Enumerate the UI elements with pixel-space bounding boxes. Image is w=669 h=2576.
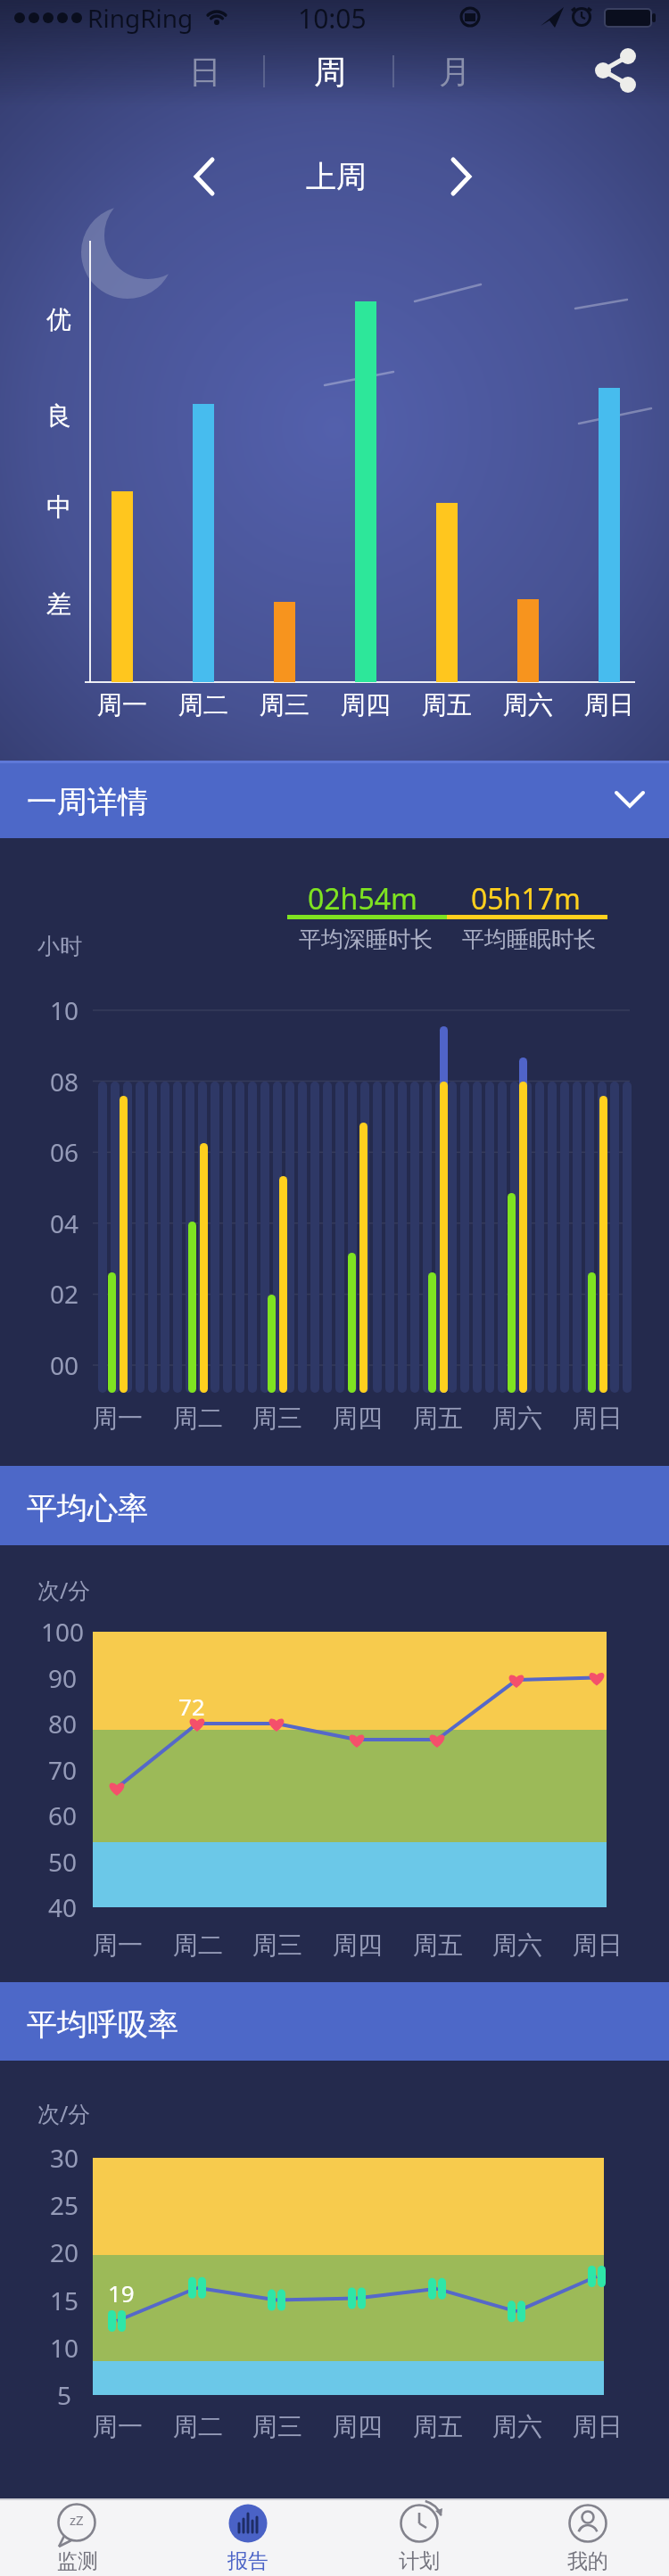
staticText: 60 — [48, 1798, 78, 1832]
staticText: 周二 — [173, 1930, 223, 1961]
staticText: 05h17m — [471, 879, 581, 918]
staticText: 周五 — [413, 1930, 463, 1961]
staticText: 周六 — [492, 1403, 542, 1434]
staticText: 周 — [314, 52, 346, 92]
staticText: 周一 — [93, 1403, 143, 1434]
staticText: RingRing — [87, 1, 194, 35]
button[interactable] — [0, 1982, 669, 2061]
staticText: 周五 — [413, 1403, 463, 1434]
staticText: 日 — [189, 52, 221, 92]
staticText: 周二 — [173, 2411, 223, 2442]
staticText: 周日 — [573, 2411, 623, 2442]
staticText: 06 — [50, 1135, 79, 1169]
staticText: 周一 — [93, 1930, 143, 1961]
button[interactable] — [0, 2498, 168, 2576]
button[interactable] — [580, 36, 651, 107]
button[interactable] — [169, 143, 241, 210]
staticText: 月 — [439, 52, 471, 92]
staticText: 一周详情 — [27, 783, 148, 821]
staticText: 周五 — [413, 2411, 463, 2442]
button[interactable] — [0, 761, 669, 838]
staticText: 周三 — [252, 1930, 302, 1961]
staticText: 5 — [57, 2378, 72, 2412]
staticText: 周一 — [93, 2411, 143, 2442]
staticText: 监测 — [57, 2548, 98, 2574]
staticText: 次/分 — [37, 2098, 91, 2128]
staticText: 02 — [50, 1277, 79, 1311]
staticText: 08 — [50, 1065, 79, 1099]
button[interactable] — [334, 2498, 502, 2576]
staticText: 平均深睡时长 — [299, 926, 433, 953]
staticText: 小时 — [37, 933, 82, 960]
staticText: 周五 — [422, 689, 472, 720]
staticText: 15 — [50, 2284, 79, 2317]
staticText: 平均睡眠时长 — [462, 926, 596, 953]
staticText: 周四 — [341, 689, 391, 720]
staticText: zZ — [70, 2511, 84, 2529]
button[interactable]: 日 — [169, 41, 241, 102]
staticText: 90 — [48, 1661, 78, 1695]
staticText: 周四 — [333, 2411, 383, 2442]
staticText: 周六 — [492, 2411, 542, 2442]
staticText: 良 — [46, 400, 71, 432]
staticText: 10:05 — [298, 0, 367, 37]
staticText: 周三 — [260, 689, 310, 720]
staticText: 周一 — [97, 689, 147, 720]
staticText: 周日 — [584, 689, 634, 720]
staticText: 72 — [178, 1691, 205, 1722]
button[interactable]: 周 — [294, 41, 366, 102]
staticText: 70 — [48, 1753, 78, 1787]
staticText: 10 — [50, 2331, 79, 2365]
staticText: 25 — [50, 2188, 79, 2222]
staticText: 次/分 — [37, 1575, 91, 1605]
staticText: 19 — [108, 2277, 135, 2309]
button[interactable] — [434, 143, 505, 210]
staticText: 50 — [48, 1845, 78, 1879]
staticText: 10 — [50, 993, 79, 1027]
staticText: 上周 — [306, 158, 367, 196]
staticText: 报告 — [227, 2548, 268, 2574]
button[interactable] — [0, 1466, 669, 1545]
staticText: 02h54m — [308, 879, 417, 918]
staticText: 周六 — [492, 1930, 542, 1961]
staticText: 100 — [41, 1615, 85, 1649]
staticText: 30 — [50, 2141, 79, 2175]
staticText: 00 — [50, 1348, 79, 1382]
staticText: 40 — [48, 1890, 78, 1924]
staticText: 周日 — [573, 1403, 623, 1434]
staticText: 计划 — [399, 2548, 440, 2574]
staticText: 周日 — [573, 1930, 623, 1961]
staticText: 优 — [46, 304, 71, 335]
staticText: 中 — [46, 491, 71, 523]
staticText: 我的 — [567, 2548, 608, 2574]
staticText: 周二 — [173, 1403, 223, 1434]
staticText: 平均呼吸率 — [27, 2005, 178, 2044]
staticText: 周四 — [333, 1403, 383, 1434]
button[interactable] — [168, 2498, 335, 2576]
button[interactable]: 月 — [419, 41, 491, 102]
button[interactable] — [502, 2498, 669, 2576]
staticText: 周二 — [178, 689, 228, 720]
staticText: 周三 — [252, 2411, 302, 2442]
staticText: 20 — [50, 2235, 79, 2269]
staticText: 04 — [50, 1206, 79, 1240]
staticText: 平均心率 — [27, 1489, 148, 1527]
staticText: 周四 — [333, 1930, 383, 1961]
staticText: 80 — [48, 1707, 78, 1741]
staticText: 差 — [46, 588, 71, 620]
staticText: 周三 — [252, 1403, 302, 1434]
staticText: 周六 — [503, 689, 553, 720]
